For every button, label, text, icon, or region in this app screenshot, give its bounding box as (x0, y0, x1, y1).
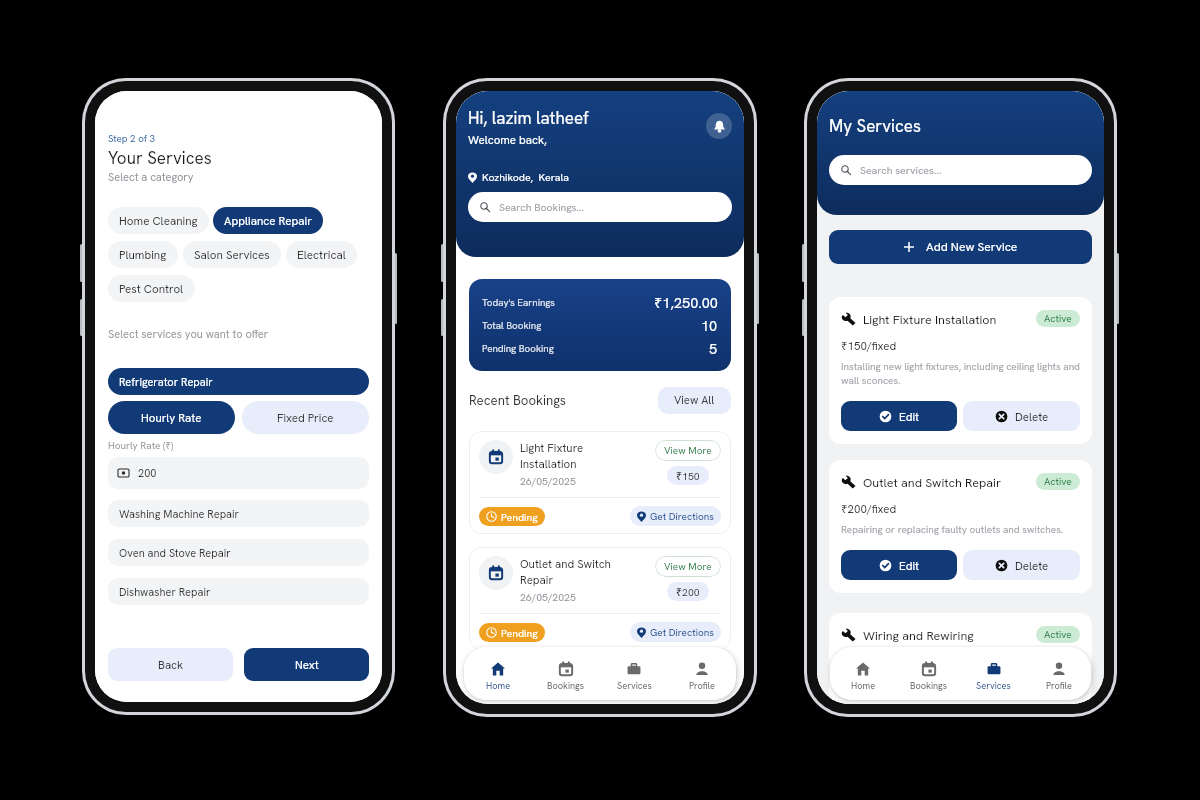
button[interactable]: Search Bookings... (468, 192, 732, 222)
staticText: Outlet and Switch Repair (863, 474, 1002, 490)
staticText: ₹300/fixed (841, 654, 897, 670)
staticText: Complete home rewiring services. (841, 676, 993, 689)
button[interactable]: Fixed Price (242, 401, 369, 434)
button[interactable]: Services (600, 647, 668, 700)
button[interactable]: Appliance Repair (213, 207, 323, 234)
staticText: Repairing or replacing faulty outlets an… (841, 523, 1064, 536)
button[interactable]: Wiring and Rewiring (829, 613, 1092, 704)
staticText: Next (295, 657, 319, 672)
staticText: 5 (709, 339, 718, 358)
staticText: 200 (138, 466, 157, 480)
staticText: View More (664, 560, 712, 573)
staticText: Get Directions (650, 626, 714, 639)
staticText: Electrical (297, 247, 346, 262)
button[interactable]: Pest Control (108, 275, 195, 302)
button[interactable]: Bookings (896, 647, 961, 700)
button[interactable]: Notifications (706, 113, 732, 139)
button[interactable]: Next (244, 648, 369, 681)
button[interactable]: Add New Service (829, 230, 1092, 264)
staticText: Bookings (910, 680, 948, 692)
staticText: Hourly Rate (₹) (108, 438, 174, 452)
staticText: Appliance Repair (224, 213, 312, 228)
staticText: Services (617, 680, 652, 692)
button[interactable]: Profile (1026, 647, 1091, 700)
button[interactable]: Delete (963, 401, 1080, 431)
staticText: Total Booking (482, 319, 542, 332)
button[interactable]: Edit (841, 401, 957, 431)
staticText: Home (486, 680, 511, 692)
staticText: Select a category (108, 170, 194, 184)
staticText: Delete (1015, 409, 1049, 424)
staticText: Today's Earnings (482, 296, 555, 309)
staticText: Recent Bookings (469, 392, 567, 409)
button[interactable]: Home (830, 647, 896, 700)
button[interactable]: Salon Services (183, 241, 281, 268)
button[interactable]: Light Fixture Installation (829, 297, 1092, 444)
staticText: Active (1044, 475, 1072, 488)
staticText: Washing Machine Repair (119, 507, 239, 521)
button[interactable]: Home Cleaning (108, 207, 209, 234)
staticText: My Services (829, 115, 921, 137)
staticText: Services (976, 680, 1011, 692)
button[interactable]: Home (464, 647, 532, 700)
button[interactable]: View All (658, 387, 731, 414)
staticText: Edit (899, 558, 919, 573)
button[interactable]: Light Fixture Installation (469, 431, 731, 534)
staticText: ₹150 (676, 469, 700, 483)
button[interactable]: Get Directions (630, 622, 721, 642)
button[interactable]: Edit (841, 550, 957, 580)
staticText: Salon Services (194, 247, 270, 262)
button[interactable]: Outlet and Switch Repair (469, 547, 731, 650)
staticText: Refrigerator Repair (119, 375, 213, 389)
staticText: Pending (501, 626, 538, 640)
staticText: Back (158, 657, 184, 672)
button[interactable]: 200 (108, 457, 369, 489)
button[interactable]: Dishwasher Repair (108, 578, 369, 605)
staticText: Installing new light fixtures, including… (841, 360, 1080, 387)
button[interactable]: Hourly Rate (108, 401, 235, 434)
staticText: Dishwasher Repair (119, 585, 211, 599)
button[interactable]: Bookings (532, 647, 600, 700)
button[interactable]: Outlet and Switch Repair (829, 460, 1092, 593)
staticText: Home Cleaning (119, 213, 198, 228)
staticText: 26/05/2025 (520, 590, 576, 604)
staticText: Get Directions (650, 510, 714, 523)
staticText: Search services... (860, 163, 942, 177)
button[interactable]: Get Directions (630, 506, 721, 526)
staticText: Plumbing (119, 247, 167, 262)
staticText: View All (674, 393, 715, 408)
staticText: Light Fixture Installation (520, 440, 584, 472)
button[interactable]: Pending (479, 623, 545, 642)
button[interactable]: View More (655, 556, 721, 577)
button[interactable]: Search services... (829, 155, 1092, 185)
button[interactable]: Washing Machine Repair (108, 500, 369, 527)
button[interactable]: Refrigerator Repair (108, 368, 369, 395)
button[interactable]: View More (655, 440, 721, 461)
staticText: Edit (899, 409, 919, 424)
staticText: Add New Service (926, 239, 1018, 255)
staticText: ₹1,250.00 (654, 292, 718, 312)
staticText: Kozhikode, Kerala (482, 170, 569, 184)
staticText: Step 2 of 3 (108, 132, 156, 145)
staticText: 10 (701, 316, 718, 335)
button[interactable]: Profile (668, 647, 736, 700)
staticText: Wiring and Rewiring (863, 627, 974, 643)
staticText: View More (664, 444, 712, 457)
staticText: Hourly Rate (141, 410, 202, 425)
staticText: Active (1044, 312, 1072, 325)
staticText: ₹150/fixed (841, 338, 897, 354)
button[interactable]: Plumbing (108, 241, 178, 268)
button[interactable]: Electrical (286, 241, 357, 268)
button[interactable]: Delete (963, 550, 1080, 580)
button[interactable]: Services (961, 647, 1026, 700)
staticText: Light Fixture Installation (863, 311, 997, 327)
button[interactable]: Pending (479, 507, 545, 526)
staticText: Your Services (108, 147, 212, 169)
staticText: ₹200 (676, 585, 700, 599)
button[interactable]: Back (108, 648, 233, 681)
staticText: Bookings (547, 680, 585, 692)
staticText: Hi, lazim latheef (468, 107, 589, 129)
button[interactable]: Oven and Stove Repair (108, 539, 369, 566)
staticText: Profile (689, 680, 715, 692)
staticText: Delete (1015, 558, 1049, 573)
